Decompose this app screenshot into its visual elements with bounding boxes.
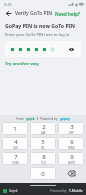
staticText: Gojek (9, 189, 18, 193)
staticText: 2 (42, 123, 46, 131)
staticText: ABC (41, 131, 46, 135)
staticText: Enter your GoTo PIN here to log in. (5, 32, 71, 37)
staticText: 7 (14, 153, 18, 161)
staticText: WXYZ (68, 161, 75, 165)
button[interactable]: 4 (2, 137, 28, 150)
staticText: 9 (70, 153, 74, 161)
staticText: gojek (26, 117, 35, 121)
staticText: GHI (13, 146, 18, 150)
staticText: 8 (42, 153, 46, 161)
staticText: JKL (41, 146, 45, 150)
staticText: GoPay PIN is now GoTo PIN (5, 22, 75, 29)
button[interactable]: Try another way (5, 61, 39, 67)
staticText: 4 (14, 138, 18, 146)
staticText: TUV (41, 161, 46, 165)
staticText: 3 (70, 123, 74, 131)
button[interactable]: 0 (30, 167, 56, 180)
staticText: 6 (70, 138, 74, 146)
button[interactable]: Backspace (58, 167, 84, 180)
button[interactable]: 8 (30, 152, 56, 165)
staticText: Need help? (55, 11, 80, 17)
button[interactable]: Need help? (53, 10, 82, 18)
button[interactable]: 7 (2, 152, 28, 165)
button[interactable]: 5 (30, 137, 56, 150)
button[interactable]: Show PIN (68, 46, 75, 53)
staticText: From (16, 117, 24, 121)
button[interactable]: 6 (58, 137, 84, 150)
staticText: 1 (13, 125, 17, 133)
staticText: Try another way (5, 61, 39, 67)
button[interactable]: 9 (58, 152, 84, 165)
staticText: Powered by (40, 117, 58, 121)
button[interactable]: 1 (2, 122, 28, 135)
staticText: PQRS (12, 161, 19, 165)
staticText: Protected by (50, 189, 67, 193)
staticText: MNO (68, 146, 75, 150)
button[interactable]: Show PIN (5, 41, 81, 57)
button[interactable]: Back (4, 9, 13, 18)
staticText: T-Mobile (69, 189, 83, 193)
button[interactable]: 3 (58, 122, 84, 135)
staticText: 9:41 (4, 2, 12, 7)
staticText: gopay (60, 117, 70, 121)
staticText: 0 (41, 170, 45, 178)
button[interactable]: 2 (30, 122, 56, 135)
staticText: DEF (69, 131, 74, 135)
staticText: 5 (41, 138, 45, 146)
staticText: Verify GoTo PIN (15, 10, 53, 17)
